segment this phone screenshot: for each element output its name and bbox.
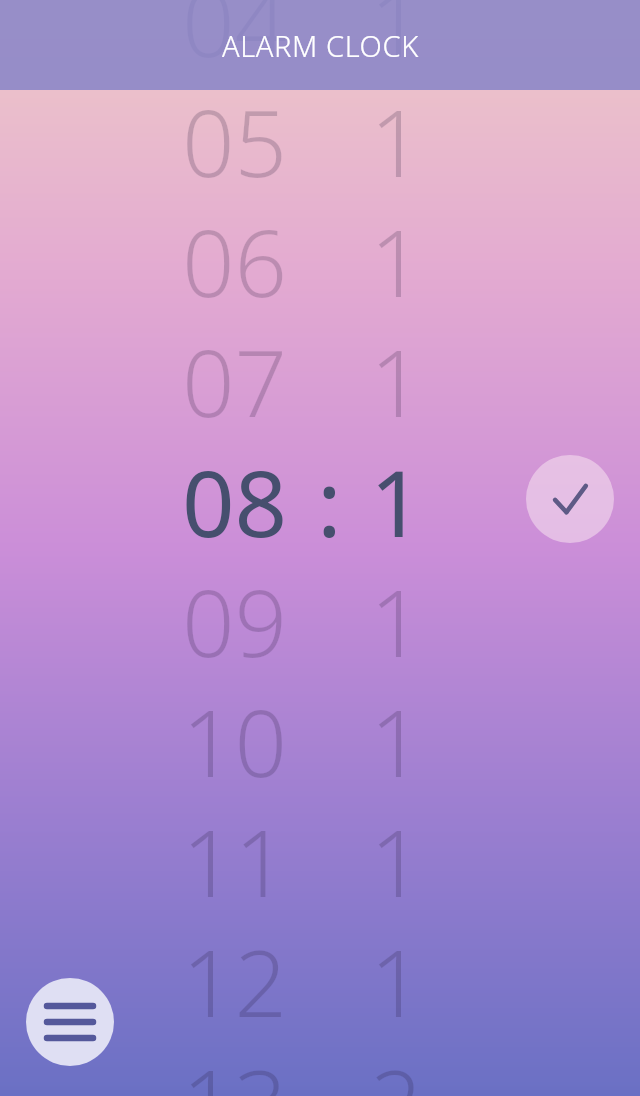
staticText: 13 <box>182 1039 288 1096</box>
button[interactable]: 08 <box>0 439 640 559</box>
button[interactable]: 06 <box>0 199 640 319</box>
staticText: 06 <box>182 199 288 319</box>
staticText: 18 <box>370 799 460 919</box>
button[interactable]: Confirm alarm time <box>526 455 614 543</box>
button[interactable]: 12 <box>0 919 640 1039</box>
staticText: 12 <box>182 919 288 1039</box>
button[interactable]: 07 <box>0 319 640 439</box>
staticText: 08 <box>182 439 288 559</box>
staticText: 10 <box>182 679 288 799</box>
button[interactable]: Open menu <box>26 978 114 1066</box>
button[interactable]: 11 <box>0 799 640 919</box>
staticText: 07 <box>182 319 288 439</box>
staticText: 04 <box>182 0 288 79</box>
staticText: 11 <box>370 0 460 79</box>
staticText: 15 <box>370 439 460 559</box>
staticText: 16 <box>370 559 460 679</box>
button[interactable]: 13 <box>0 1039 640 1096</box>
staticText: 05 <box>182 79 288 199</box>
staticText: 19 <box>370 919 460 1039</box>
staticText: 09 <box>182 559 288 679</box>
staticText: 12 <box>370 79 460 199</box>
staticText: 20 <box>370 1039 460 1096</box>
staticText: 11 <box>182 799 288 919</box>
staticText: : <box>317 439 342 559</box>
staticText: ALARM CLOCK <box>222 26 419 65</box>
staticText: 14 <box>370 319 460 439</box>
button[interactable]: 10 <box>0 679 640 799</box>
button[interactable]: 09 <box>0 559 640 679</box>
button[interactable]: 04 <box>0 0 640 79</box>
staticText: 17 <box>370 679 460 799</box>
staticText: 13 <box>370 199 460 319</box>
button[interactable]: 05 <box>0 79 640 199</box>
